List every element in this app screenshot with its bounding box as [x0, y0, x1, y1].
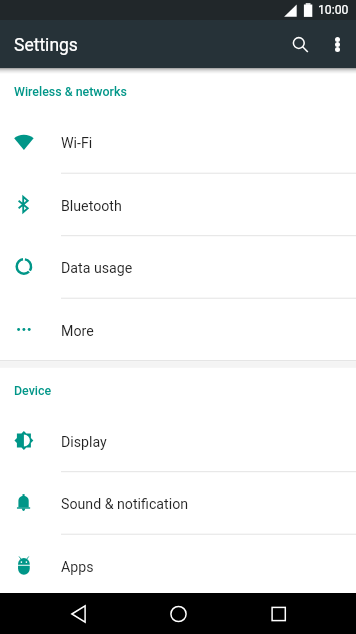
staticText: More	[61, 323, 94, 340]
staticText: Data usage	[61, 260, 133, 277]
staticText: Device	[14, 383, 52, 398]
staticText: Bluetooth	[61, 198, 122, 215]
button[interactable]: Display	[0, 409, 356, 472]
staticText: Sound & notification	[61, 496, 189, 513]
button[interactable]: Bluetooth	[0, 173, 356, 236]
button[interactable]: More	[0, 298, 356, 361]
staticText: Display	[61, 434, 107, 451]
button[interactable]: Apps	[0, 534, 356, 597]
button[interactable]: Search	[279, 20, 321, 68]
button[interactable]: Data usage	[0, 235, 356, 298]
button[interactable]: Wi-Fi	[0, 110, 356, 173]
staticText: Wireless & networks	[14, 84, 127, 99]
button[interactable]: Home	[153, 593, 205, 634]
button[interactable]: Back	[52, 593, 104, 634]
button[interactable]: Recent apps	[253, 593, 305, 634]
button[interactable]: More options	[318, 20, 356, 68]
staticText: Apps	[61, 559, 94, 576]
staticText: 10:00	[318, 3, 349, 17]
staticText: Settings	[14, 35, 78, 56]
staticText: Wi-Fi	[61, 135, 93, 152]
button[interactable]: Sound & notification	[0, 471, 356, 534]
